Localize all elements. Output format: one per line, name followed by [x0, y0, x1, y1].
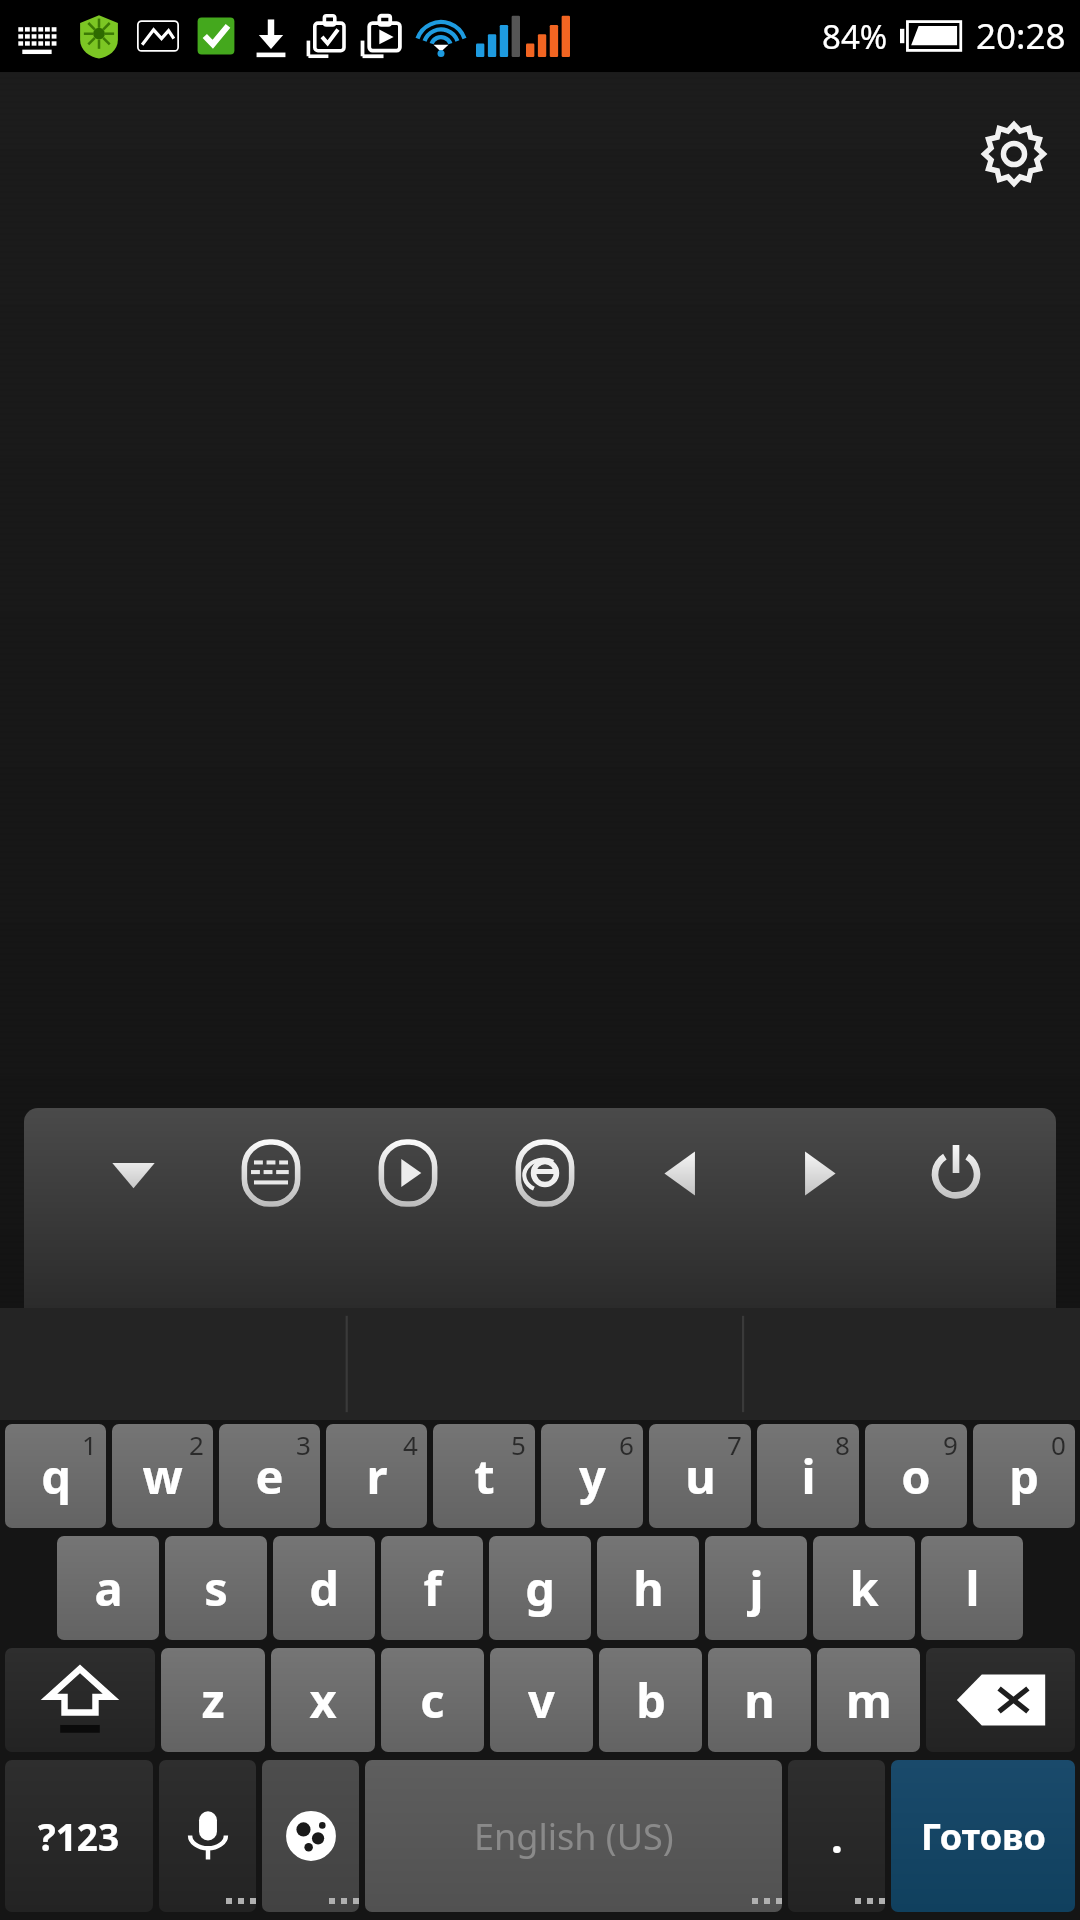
- staticText: x: [309, 1668, 337, 1732]
- staticText: j: [749, 1556, 764, 1620]
- staticText: l: [965, 1556, 980, 1620]
- button[interactable]: Готово: [891, 1760, 1075, 1912]
- staticText: i: [801, 1444, 816, 1508]
- staticText: r: [366, 1444, 388, 1508]
- button[interactable]: i: [757, 1424, 859, 1528]
- button[interactable]: v: [490, 1648, 593, 1752]
- staticText: k: [849, 1556, 879, 1620]
- staticText: .: [831, 1808, 843, 1865]
- button[interactable]: e: [219, 1424, 320, 1528]
- staticText: u: [685, 1444, 716, 1508]
- button[interactable]: f: [381, 1536, 483, 1640]
- button[interactable]: t: [433, 1424, 535, 1528]
- button[interactable]: b: [599, 1648, 702, 1752]
- staticText: a: [94, 1556, 123, 1620]
- staticText: 3: [296, 1427, 311, 1462]
- staticText: b: [636, 1668, 666, 1732]
- staticText: n: [744, 1668, 775, 1732]
- staticText: 1: [82, 1427, 97, 1462]
- staticText: s: [204, 1556, 228, 1620]
- staticText: p: [1009, 1444, 1039, 1508]
- button[interactable]: h: [597, 1536, 699, 1640]
- staticText: ?123: [38, 1811, 120, 1861]
- button[interactable]: p: [973, 1424, 1075, 1528]
- staticText: 8: [835, 1427, 850, 1462]
- button[interactable]: Forward: [750, 1108, 887, 1238]
- button[interactable]: d: [273, 1536, 375, 1640]
- staticText: 4: [403, 1427, 418, 1462]
- button[interactable]: s: [165, 1536, 267, 1640]
- staticText: q: [41, 1444, 71, 1508]
- button[interactable]: c: [381, 1648, 484, 1752]
- staticText: g: [525, 1556, 555, 1620]
- button[interactable]: Browser: [476, 1108, 613, 1238]
- button[interactable]: o: [865, 1424, 967, 1528]
- button[interactable]: m: [817, 1648, 920, 1752]
- staticText: 20:28: [976, 12, 1066, 60]
- button[interactable]: Settings: [974, 114, 1054, 194]
- staticText: 9: [943, 1427, 958, 1462]
- staticText: 7: [727, 1427, 742, 1462]
- staticText: z: [201, 1668, 225, 1732]
- staticText: o: [901, 1444, 931, 1508]
- button[interactable]: l: [921, 1536, 1023, 1640]
- button[interactable]: Shift: [5, 1648, 155, 1752]
- button[interactable]: Play: [339, 1108, 476, 1238]
- button[interactable]: y: [541, 1424, 643, 1528]
- button[interactable]: Collapse: [64, 1108, 202, 1238]
- button[interactable]: u: [649, 1424, 751, 1528]
- button[interactable]: Keyboard: [202, 1108, 339, 1238]
- button[interactable]: Symbols: [5, 1760, 153, 1912]
- staticText: c: [420, 1668, 445, 1732]
- staticText: 5: [511, 1427, 526, 1462]
- staticText: 2: [189, 1427, 204, 1462]
- button[interactable]: Power: [887, 1108, 1024, 1238]
- button[interactable]: g: [489, 1536, 591, 1640]
- staticText: t: [474, 1444, 495, 1508]
- staticText: v: [528, 1668, 555, 1732]
- staticText: Готово: [921, 1812, 1046, 1861]
- button[interactable]: r: [326, 1424, 427, 1528]
- staticText: m: [846, 1668, 892, 1732]
- staticText: 0: [1051, 1427, 1066, 1462]
- button[interactable]: w: [112, 1424, 213, 1528]
- button[interactable]: x: [271, 1648, 375, 1752]
- button[interactable]: Voice input: [159, 1760, 256, 1912]
- button[interactable]: k: [813, 1536, 915, 1640]
- staticText: w: [142, 1444, 183, 1508]
- button[interactable]: Change language: [262, 1760, 359, 1912]
- staticText: h: [633, 1556, 664, 1620]
- button[interactable]: j: [705, 1536, 807, 1640]
- button[interactable]: a: [57, 1536, 159, 1640]
- button[interactable]: Backspace: [926, 1648, 1075, 1752]
- button[interactable]: n: [708, 1648, 811, 1752]
- staticText: e: [255, 1444, 284, 1508]
- button[interactable]: Back: [613, 1108, 750, 1238]
- staticText: 84%: [822, 14, 888, 59]
- staticText: d: [309, 1556, 339, 1620]
- button[interactable]: z: [161, 1648, 265, 1752]
- staticText: y: [579, 1444, 606, 1508]
- staticText: English (US): [474, 1812, 674, 1861]
- button[interactable]: English (US): [365, 1760, 782, 1912]
- button[interactable]: q: [5, 1424, 106, 1528]
- staticText: 6: [619, 1427, 634, 1462]
- staticText: f: [423, 1556, 442, 1620]
- button[interactable]: Period: [788, 1760, 885, 1912]
